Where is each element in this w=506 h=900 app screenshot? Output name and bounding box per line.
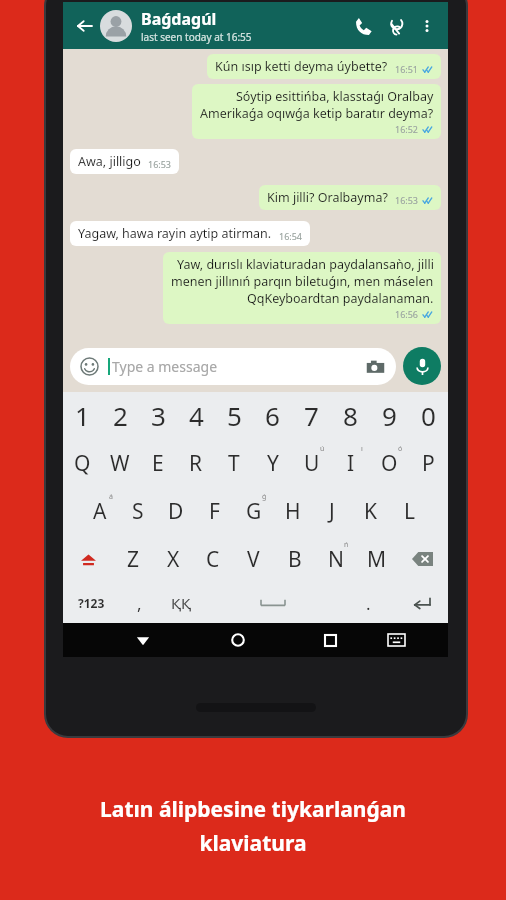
button[interactable]: 2 [101,392,139,439]
button[interactable]: Home [213,623,262,657]
staticText: 5 [227,398,242,433]
button[interactable]: Shift [63,535,113,583]
button[interactable]: ?123 [63,583,119,623]
staticText: á [109,492,113,502]
button[interactable]: N [315,535,356,583]
button[interactable]: C [193,535,233,583]
staticText: ń [344,540,349,550]
button[interactable]: 7 [292,392,331,439]
button[interactable]: 5 [215,392,253,439]
button[interactable]: 3 [139,392,177,439]
button[interactable]: G [234,487,273,535]
staticText: ǵ [262,492,267,502]
button[interactable]: Space [204,583,342,623]
button[interactable]: Awa, jilligo [70,149,179,174]
staticText: S [132,497,144,526]
staticText: Baǵdagúl [141,8,217,30]
staticText: K [364,497,377,526]
button[interactable]: Yaw, durıslı klaviaturadan paydalansaǹo,… [163,252,441,324]
staticText: ?123 [78,595,105,611]
button[interactable]: Y [253,439,292,487]
button[interactable]: P [409,439,448,487]
button[interactable]: I [331,439,370,487]
staticText: N [328,545,344,574]
staticText: M [367,545,387,574]
button[interactable]: Enter [395,583,448,623]
staticText: X [167,545,180,574]
button[interactable]: 4 [177,392,215,439]
button[interactable]: D [157,487,195,535]
staticText: . [366,592,371,615]
staticText: Q [74,449,91,478]
button[interactable]: J [312,487,351,535]
staticText: 4 [189,398,204,433]
button[interactable]: Voice message [403,347,441,385]
button[interactable]: Yagaw, hawa rayin aytip atirman. [70,221,310,246]
button[interactable]: E [139,439,177,487]
button[interactable]: W [101,439,139,487]
button[interactable]: M [356,535,397,583]
button[interactable]: Camera [364,356,386,378]
staticText: ó [398,444,403,454]
button[interactable]: Kún ısıp ketti deyma úybette? [207,54,441,79]
button[interactable]: Back [118,623,168,657]
staticText: ú [320,444,325,454]
staticText: Yagaw, hawa rayin aytip atirman. [78,225,272,242]
button[interactable]: Kim jilli? Oralbayma? [259,185,441,210]
button[interactable]: ҚҚ [159,583,204,623]
staticText: F [209,497,220,526]
staticText: Yaw, durıslı klaviaturadan paydalansaǹo,… [177,256,434,273]
staticText: Type a message [112,357,218,376]
button[interactable]: K [351,487,390,535]
staticText: U [304,449,320,478]
button[interactable]: Switch keyboard [372,623,421,657]
button[interactable]: Q [63,439,101,487]
button[interactable]: 6 [253,392,292,439]
button[interactable]: 9 [370,392,409,439]
button[interactable]: B [274,535,315,583]
button[interactable]: O [370,439,409,487]
staticText: menen jillınıń parqın biletuǵın, men más… [171,273,434,290]
button[interactable]: More options [414,13,440,39]
staticText: 8 [343,398,358,433]
button[interactable]: A [81,487,119,535]
staticText: 16:53 [395,194,419,206]
staticText: 1 [75,398,90,433]
button[interactable]: Type a message [70,348,396,385]
button[interactable]: , [119,583,159,623]
button[interactable]: X [153,535,193,583]
staticText: Awa, jilligo [78,153,141,170]
button[interactable]: R [177,439,215,487]
button[interactable]: Sóytip esittińba, klasstaǵı Oralbay [192,84,441,139]
button[interactable]: T [215,439,253,487]
staticText: 0 [421,398,436,433]
button[interactable]: F [195,487,234,535]
staticText: 9 [382,398,397,433]
staticText: B [288,545,302,574]
staticText: A [93,497,107,526]
button[interactable]: H [273,487,312,535]
button[interactable]: V [233,535,274,583]
button[interactable]: Backspace [397,535,448,583]
button[interactable]: S [119,487,157,535]
button[interactable]: Call [346,9,380,43]
staticText: Kim jilli? Oralbayma? [267,189,388,206]
button[interactable]: L [390,487,429,535]
button[interactable]: 8 [331,392,370,439]
button[interactable]: . [342,583,395,623]
staticText: ı [361,444,363,454]
staticText: G [246,497,262,526]
staticText: R [189,449,203,478]
staticText: H [285,497,301,526]
button[interactable]: Z [113,535,153,583]
staticText: T [228,449,240,478]
button[interactable]: U [292,439,331,487]
button[interactable]: 0 [409,392,448,439]
button[interactable]: Recents [306,623,355,657]
staticText: 7 [304,398,319,433]
button[interactable]: Back [71,13,97,39]
button[interactable]: Attach [380,9,414,43]
button[interactable]: 1 [63,392,101,439]
staticText: W [110,449,130,478]
staticText: Sóytip esittińba, klasstaǵı Oralbay [236,88,434,105]
